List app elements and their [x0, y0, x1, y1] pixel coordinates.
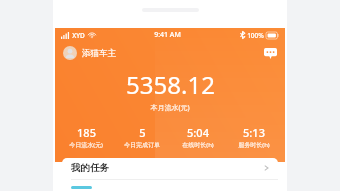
- staticText: 5358.12: [126, 68, 215, 101]
- staticText: 本月流水(元): [150, 103, 190, 113]
- staticText: 今日流水(元): [69, 141, 103, 149]
- staticText: 我的任务: [71, 162, 109, 174]
- staticText: 185: [77, 125, 96, 140]
- button[interactable]: 5:13: [226, 125, 282, 149]
- staticText: 在线时长(h): [182, 141, 214, 149]
- staticText: 服务时长(h): [238, 141, 270, 149]
- staticText: 5:13: [243, 125, 265, 140]
- staticText: XYD: [72, 31, 85, 40]
- staticText: 9:41 AM: [154, 30, 181, 40]
- button[interactable]: Messages: [264, 48, 277, 59]
- button[interactable]: 185: [58, 125, 114, 149]
- staticText: 100%: [247, 31, 264, 40]
- button[interactable]: Profile avatar: [63, 46, 77, 60]
- button[interactable]: 5:04: [170, 125, 226, 149]
- button[interactable]: 我的任务: [62, 158, 278, 191]
- staticText: 今日完成订单: [124, 141, 160, 149]
- button[interactable]: 5: [114, 125, 170, 149]
- staticText: 添猫车主: [82, 48, 116, 59]
- staticText: 5:04: [187, 125, 209, 140]
- staticText: 5: [139, 125, 146, 140]
